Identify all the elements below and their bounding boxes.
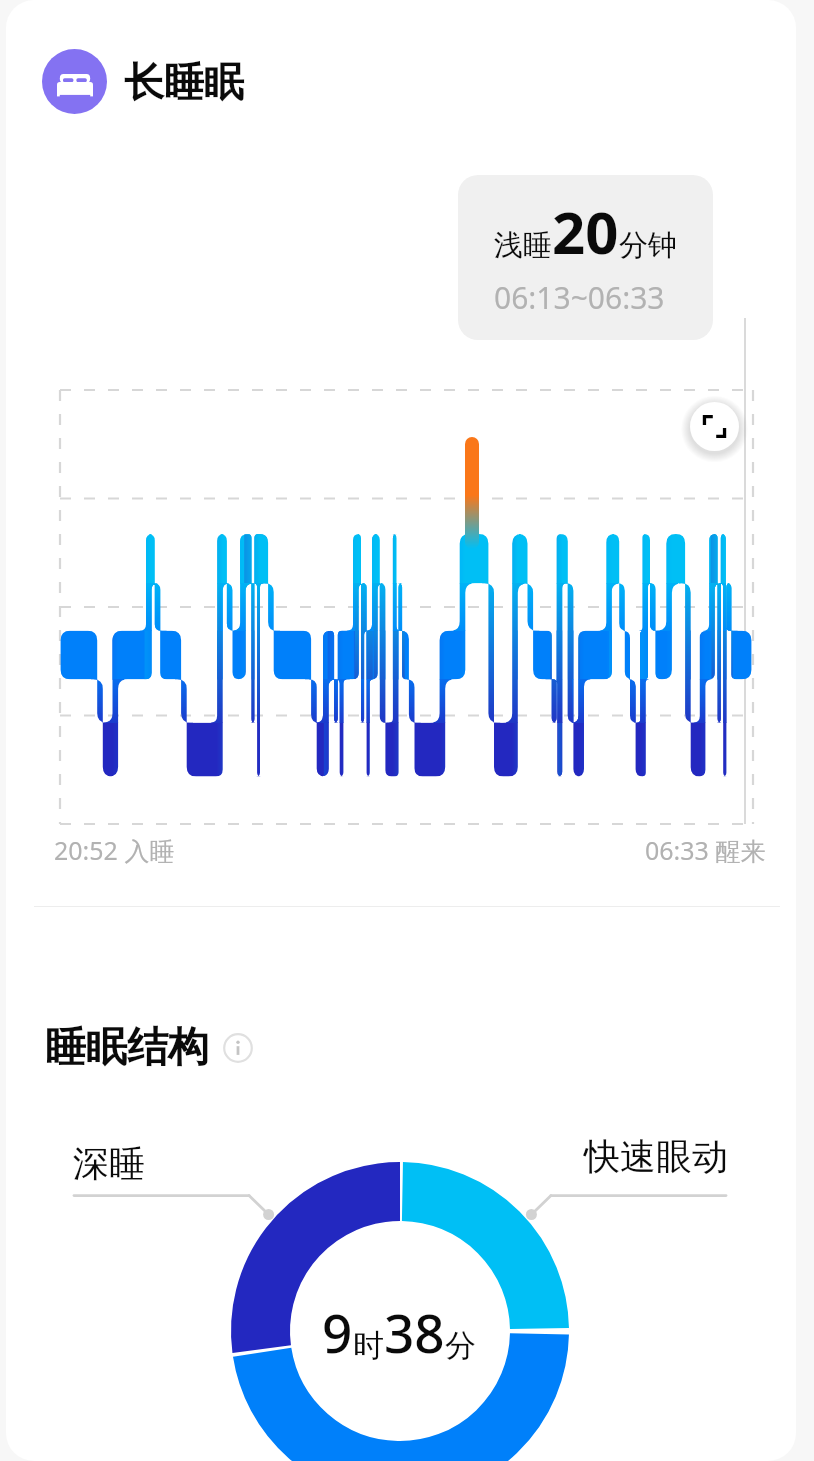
staticText: 分 xyxy=(445,1326,476,1365)
button[interactable]: 浅睡 xyxy=(458,175,713,340)
staticText: 深睡 xyxy=(73,1141,145,1186)
staticText: 快速眼动 xyxy=(584,1134,728,1179)
staticText: 睡眠结构 xyxy=(45,1022,209,1074)
staticText: 9 xyxy=(322,1296,353,1368)
button[interactable]: 长睡眠 xyxy=(42,49,244,114)
button[interactable]: Fullscreen xyxy=(690,402,739,451)
staticText: 分钟 xyxy=(619,227,677,264)
staticText: 06:13~06:33 xyxy=(494,277,665,318)
staticText: 长睡眠 xyxy=(124,57,244,107)
staticText: 时 xyxy=(353,1326,384,1365)
staticText: 浅睡 xyxy=(494,227,552,264)
staticText: 38 xyxy=(384,1296,445,1368)
button[interactable]: Info xyxy=(223,1033,253,1063)
staticText: 06:33 醒来 xyxy=(645,833,766,867)
staticText: 20 xyxy=(552,192,619,271)
staticText: 20:52 入睡 xyxy=(54,833,175,867)
